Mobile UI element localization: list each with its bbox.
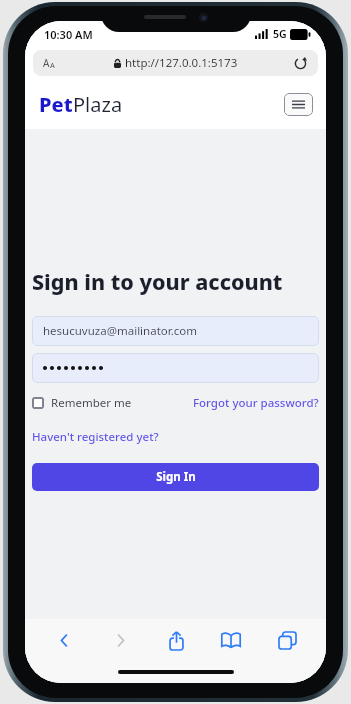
staticText: hesucuvuza@mailinator.com	[43, 323, 197, 339]
button[interactable]: A	[33, 50, 318, 76]
staticText: Remember me	[51, 395, 132, 411]
button[interactable]: Remember me	[32, 395, 132, 411]
button[interactable]: Share	[159, 623, 193, 657]
button[interactable]: hesucuvuza@mailinator.com	[32, 316, 319, 346]
staticText: Haven't registered yet?	[32, 429, 159, 445]
staticText: A	[43, 56, 50, 70]
button[interactable]: Forgot your password?	[193, 395, 319, 411]
staticText: http://127.0.0.1:5173	[125, 55, 238, 71]
button[interactable]	[32, 353, 319, 383]
staticText: Forgot your password?	[193, 395, 319, 411]
button[interactable]: Sign In	[32, 463, 319, 491]
button[interactable]: Haven't registered yet?	[32, 429, 159, 445]
staticText: Pet	[39, 91, 73, 118]
button[interactable]: Bookmarks	[214, 623, 248, 657]
staticText: 5G	[273, 27, 287, 41]
staticText: A	[50, 60, 55, 70]
button[interactable]: Forward	[103, 623, 137, 657]
button[interactable]: Back	[47, 623, 81, 657]
button[interactable]: Menu	[284, 93, 313, 116]
button[interactable]: Reload	[292, 55, 309, 72]
staticText: 10:30 AM	[44, 27, 93, 42]
staticText: Sign in to your account	[32, 267, 283, 296]
staticText: Sign In	[156, 469, 196, 485]
staticText: Plaza	[73, 91, 123, 118]
button[interactable]: Tabs	[270, 623, 304, 657]
